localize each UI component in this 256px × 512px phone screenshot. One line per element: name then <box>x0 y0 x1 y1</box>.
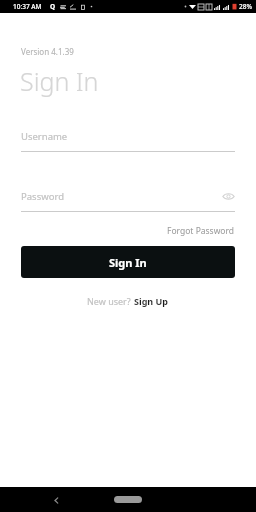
button[interactable]: Sign In <box>21 246 235 278</box>
staticText: Q <box>50 2 56 11</box>
staticText: Password <box>21 190 222 203</box>
button[interactable]: Home <box>114 496 142 503</box>
button[interactable]: Back <box>48 492 64 508</box>
staticText: Sign In <box>109 255 147 270</box>
staticText: Sign In <box>20 64 99 98</box>
staticText: 28% <box>239 2 252 11</box>
staticText: Version 4.1.39 <box>21 46 74 57</box>
staticText: Username <box>21 130 235 143</box>
button[interactable]: Forgot Password <box>165 223 237 239</box>
button[interactable]: Toggle password visibility <box>222 192 235 201</box>
button[interactable]: Sign Up <box>134 295 169 307</box>
staticText: 10:37 AM <box>13 2 42 11</box>
staticText: New user? <box>87 295 134 307</box>
button[interactable]: Password <box>21 190 235 203</box>
button[interactable]: Username <box>21 130 235 143</box>
staticText: Sign Up <box>134 295 169 307</box>
staticText: Forgot Password <box>167 225 235 237</box>
